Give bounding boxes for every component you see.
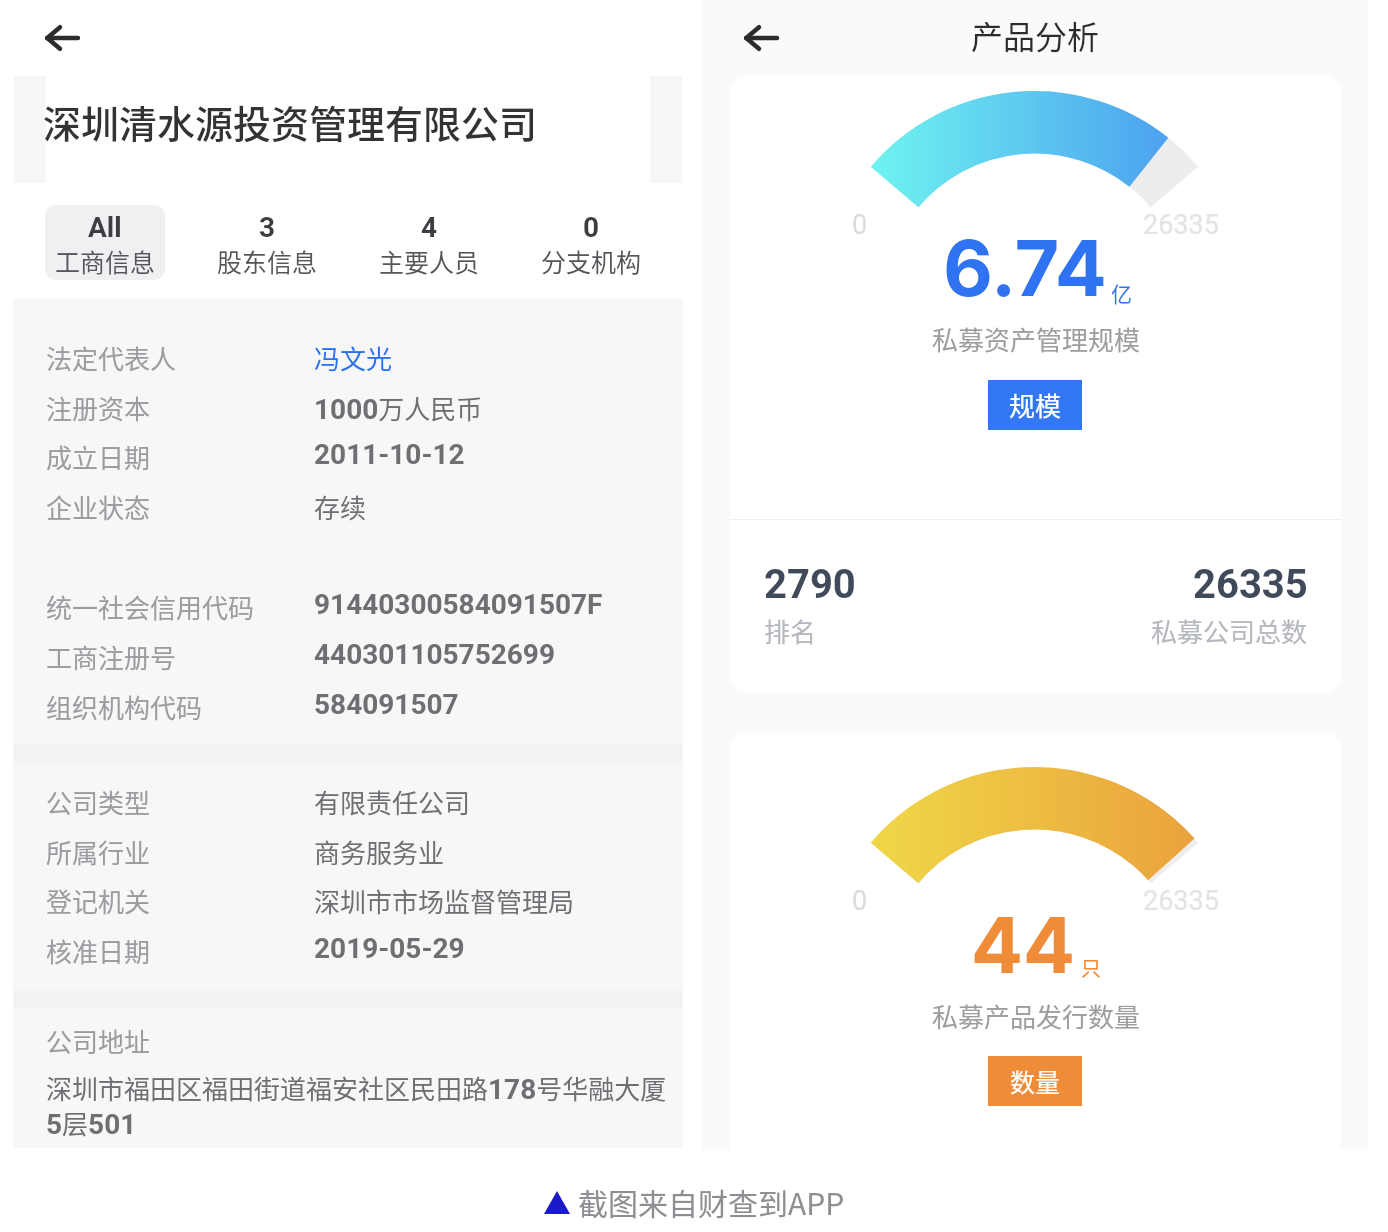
staticText: 所属行业 bbox=[46, 833, 151, 871]
staticText: 登记机关 bbox=[46, 882, 151, 920]
button[interactable]: All bbox=[45, 205, 165, 280]
staticText: 注册资本 bbox=[46, 389, 151, 427]
staticText: 私募产品发行数量 bbox=[932, 997, 1141, 1035]
staticText: 公司地址 bbox=[46, 1022, 151, 1060]
staticText: 1000万人民币 bbox=[314, 389, 483, 427]
button[interactable]: 4 bbox=[369, 205, 489, 280]
staticText: 只 bbox=[1081, 953, 1101, 982]
staticText: 工商注册号 bbox=[46, 638, 177, 676]
button[interactable]: 0 bbox=[531, 205, 651, 280]
staticText: 组织机构代码 bbox=[46, 688, 203, 726]
staticText: 法定代表人 bbox=[46, 339, 177, 377]
staticText: 存续 bbox=[314, 488, 367, 526]
staticText: 2011-10-12 bbox=[314, 438, 465, 471]
staticText: 冯文光 bbox=[314, 339, 393, 377]
staticText: 2019-05-29 bbox=[314, 932, 465, 965]
staticText: 规模 bbox=[1009, 386, 1062, 424]
staticText: 深圳市福田区福田街道福安社区民田路178号华融大厦5层501 bbox=[46, 1069, 671, 1142]
staticText: 数量 bbox=[1010, 1063, 1061, 1099]
staticText: 截图来自财查到APP bbox=[578, 1180, 845, 1223]
staticText: 有限责任公司 bbox=[314, 783, 471, 821]
button[interactable]: 3 bbox=[207, 205, 327, 280]
staticText: 股东信息 bbox=[217, 243, 318, 279]
staticText: 26335 bbox=[1143, 209, 1219, 241]
staticText: 584091507 bbox=[314, 688, 459, 721]
staticText: 26335 bbox=[1143, 885, 1219, 917]
staticText: 私募公司总数 bbox=[1151, 612, 1308, 650]
staticText: 3 bbox=[259, 211, 276, 244]
staticText: 主要人员 bbox=[379, 243, 480, 279]
staticText: 排名 bbox=[764, 612, 817, 650]
staticText: 44 bbox=[971, 898, 1076, 991]
staticText: 深圳清水源投资管理有限公司 bbox=[43, 94, 538, 149]
button[interactable]: Back bbox=[25, 13, 99, 62]
staticText: 公司类型 bbox=[46, 783, 151, 821]
staticText: 深圳市市场监督管理局 bbox=[314, 882, 575, 920]
staticText: 0 bbox=[852, 885, 868, 917]
button[interactable]: 规模 bbox=[988, 380, 1082, 430]
staticText: 成立日期 bbox=[46, 438, 151, 476]
staticText: 4 bbox=[421, 211, 438, 244]
staticText: 0 bbox=[852, 209, 868, 241]
staticText: 91440300584091507F bbox=[314, 588, 603, 621]
staticText: 6.74 bbox=[943, 221, 1107, 314]
staticText: 企业状态 bbox=[46, 488, 151, 526]
button[interactable]: Back bbox=[724, 13, 798, 62]
staticText: 商务服务业 bbox=[314, 833, 445, 871]
staticText: 核准日期 bbox=[46, 932, 151, 970]
staticText: 2790 bbox=[764, 561, 856, 608]
button[interactable]: 数量 bbox=[988, 1056, 1082, 1106]
staticText: 统一社会信用代码 bbox=[46, 588, 255, 626]
staticText: 亿 bbox=[1111, 278, 1132, 308]
staticText: 私募资产管理规模 bbox=[932, 320, 1141, 358]
staticText: All bbox=[88, 211, 122, 244]
staticText: 产品分析 bbox=[971, 12, 1100, 58]
staticText: 0 bbox=[583, 211, 600, 244]
staticText: 分支机构 bbox=[541, 243, 642, 279]
staticText: 工商信息 bbox=[55, 243, 156, 279]
staticText: 440301105752699 bbox=[314, 638, 555, 671]
staticText: 26335 bbox=[1193, 561, 1308, 608]
